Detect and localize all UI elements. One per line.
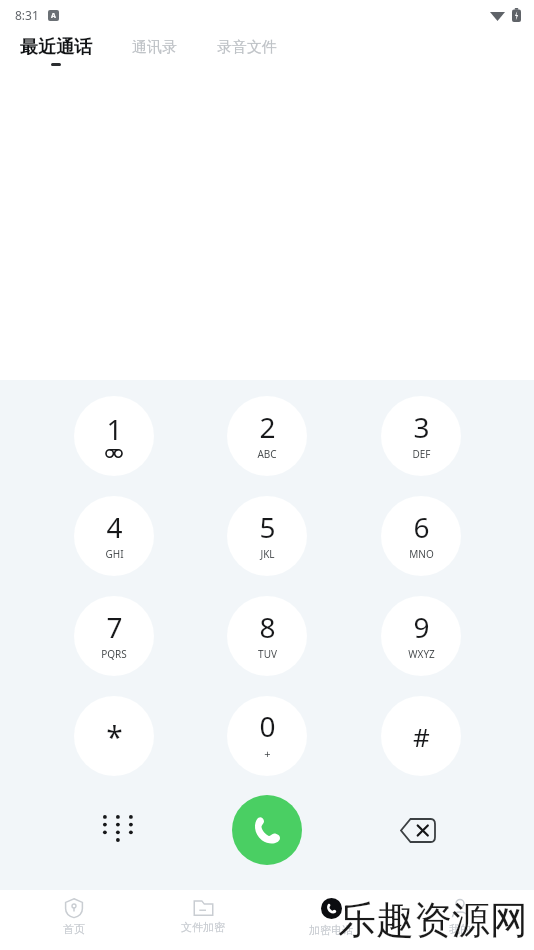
button[interactable]: 文件加密 bbox=[148, 890, 258, 950]
button[interactable]: * bbox=[74, 696, 154, 776]
staticText: PQRS bbox=[101, 647, 127, 661]
staticText: 我的 bbox=[449, 922, 471, 936]
staticText: 文件加密 bbox=[181, 920, 225, 934]
staticText: JKL bbox=[260, 547, 275, 561]
button[interactable]: 我的 bbox=[405, 890, 515, 950]
staticText: 1 bbox=[106, 410, 123, 448]
staticText: GHI bbox=[105, 547, 124, 561]
staticText: MNO bbox=[409, 547, 434, 561]
button[interactable]: 通讯录 bbox=[130, 30, 179, 65]
button[interactable]: 3 bbox=[381, 396, 461, 476]
staticText: 乐趣资源网 bbox=[338, 896, 528, 944]
staticText: TUV bbox=[258, 647, 277, 661]
button[interactable]: 最近通话 bbox=[18, 30, 94, 72]
staticText: 9 bbox=[413, 608, 430, 646]
staticText: 6 bbox=[413, 508, 430, 546]
button[interactable]: 5 bbox=[227, 496, 307, 576]
button[interactable]: 加密电话 bbox=[276, 890, 386, 950]
staticText: 3 bbox=[413, 408, 430, 446]
button[interactable]: 首页 bbox=[19, 890, 129, 950]
staticText: 通讯录 bbox=[132, 38, 177, 57]
button[interactable]: 9 bbox=[381, 596, 461, 676]
staticText: 首页 bbox=[63, 922, 85, 936]
staticText: ABC bbox=[257, 447, 277, 461]
staticText: * bbox=[106, 716, 123, 757]
staticText: 2 bbox=[259, 408, 276, 446]
button[interactable]: 1 bbox=[74, 396, 154, 476]
staticText: A bbox=[51, 11, 56, 21]
staticText: DEF bbox=[412, 447, 431, 461]
button[interactable]: 录音文件 bbox=[215, 30, 279, 65]
staticText: 8 bbox=[259, 608, 276, 646]
button[interactable]: 7 bbox=[74, 596, 154, 676]
staticText: 最近通话 bbox=[20, 36, 92, 59]
staticText: 7 bbox=[106, 608, 123, 646]
staticText: 4 bbox=[106, 508, 123, 546]
staticText: + bbox=[264, 746, 271, 761]
button[interactable]: Keypad bbox=[76, 790, 156, 870]
button[interactable]: 2 bbox=[227, 396, 307, 476]
staticText: 8:31 bbox=[15, 7, 39, 23]
button[interactable]: Call bbox=[232, 795, 302, 865]
staticText: 加密电话 bbox=[309, 923, 353, 937]
button[interactable]: 6 bbox=[381, 496, 461, 576]
button[interactable]: Backspace bbox=[378, 790, 458, 870]
staticText: 0 bbox=[259, 707, 276, 745]
button[interactable]: 8 bbox=[227, 596, 307, 676]
button[interactable]: 4 bbox=[74, 496, 154, 576]
staticText: # bbox=[413, 719, 430, 754]
button[interactable]: # bbox=[381, 696, 461, 776]
staticText: WXYZ bbox=[408, 647, 435, 661]
staticText: 5 bbox=[259, 508, 276, 546]
button[interactable]: 0 bbox=[227, 696, 307, 776]
staticText: 录音文件 bbox=[217, 38, 277, 57]
